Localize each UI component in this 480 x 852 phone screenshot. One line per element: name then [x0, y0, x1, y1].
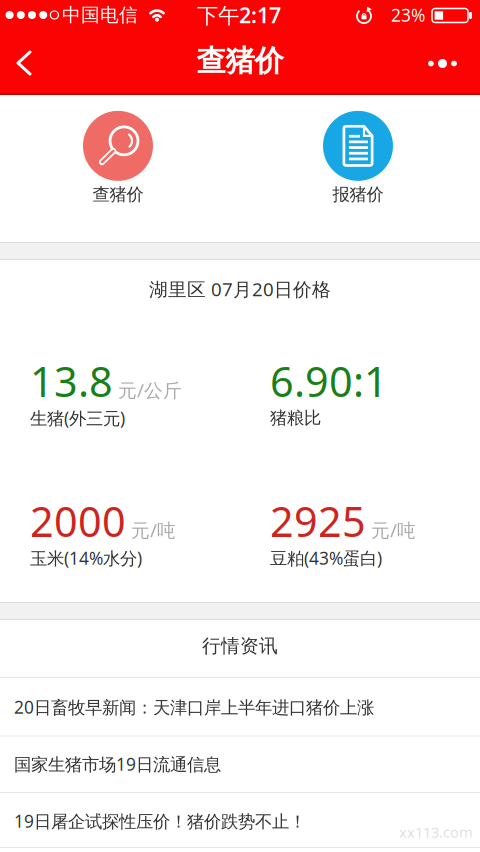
- staticText: 下午2:17: [197, 1, 281, 29]
- staticText: 2000: [30, 494, 126, 548]
- button[interactable]: More: [418, 41, 466, 85]
- staticText: 2925: [270, 494, 366, 548]
- staticText: 查猪价: [196, 43, 283, 79]
- staticText: 20日畜牧早新闻：天津口岸上半年进口猪价上涨: [14, 695, 374, 718]
- staticText: 19日屠企试探性压价！猪价跌势不止！: [14, 809, 306, 832]
- staticText: 猪粮比: [270, 407, 321, 429]
- button[interactable]: 国家生猪市场19日流通信息: [0, 736, 480, 792]
- staticText: 玉米(14%水分): [30, 546, 142, 569]
- staticText: 6.90:1: [270, 354, 388, 408]
- staticText: 查猪价: [92, 184, 143, 205]
- staticText: 13.8: [30, 354, 113, 408]
- staticText: 行情资讯: [202, 634, 278, 657]
- staticText: 23%: [391, 3, 425, 26]
- staticText: 豆粕(43%蛋白): [270, 546, 382, 569]
- button[interactable]: 查猪价: [77, 105, 159, 211]
- staticText: 生猪(外三元): [30, 406, 125, 429]
- button[interactable]: 报猪价: [317, 105, 399, 211]
- staticText: 国家生猪市场19日流通信息: [14, 752, 221, 775]
- staticText: 元/吨: [131, 518, 176, 542]
- staticText: 中国电信: [62, 3, 138, 26]
- staticText: xx113.com: [399, 822, 473, 842]
- staticText: 元/公斤: [118, 378, 182, 402]
- staticText: 元/吨: [371, 518, 416, 542]
- button[interactable]: 19日屠企试探性压价！猪价跌势不止！: [0, 793, 480, 849]
- button[interactable]: 20日畜牧早新闻：天津口岸上半年进口猪价上涨: [0, 679, 480, 735]
- staticText: 湖里区 07月20日价格: [149, 277, 331, 301]
- button[interactable]: Back: [2, 41, 46, 85]
- staticText: 报猪价: [332, 184, 383, 205]
